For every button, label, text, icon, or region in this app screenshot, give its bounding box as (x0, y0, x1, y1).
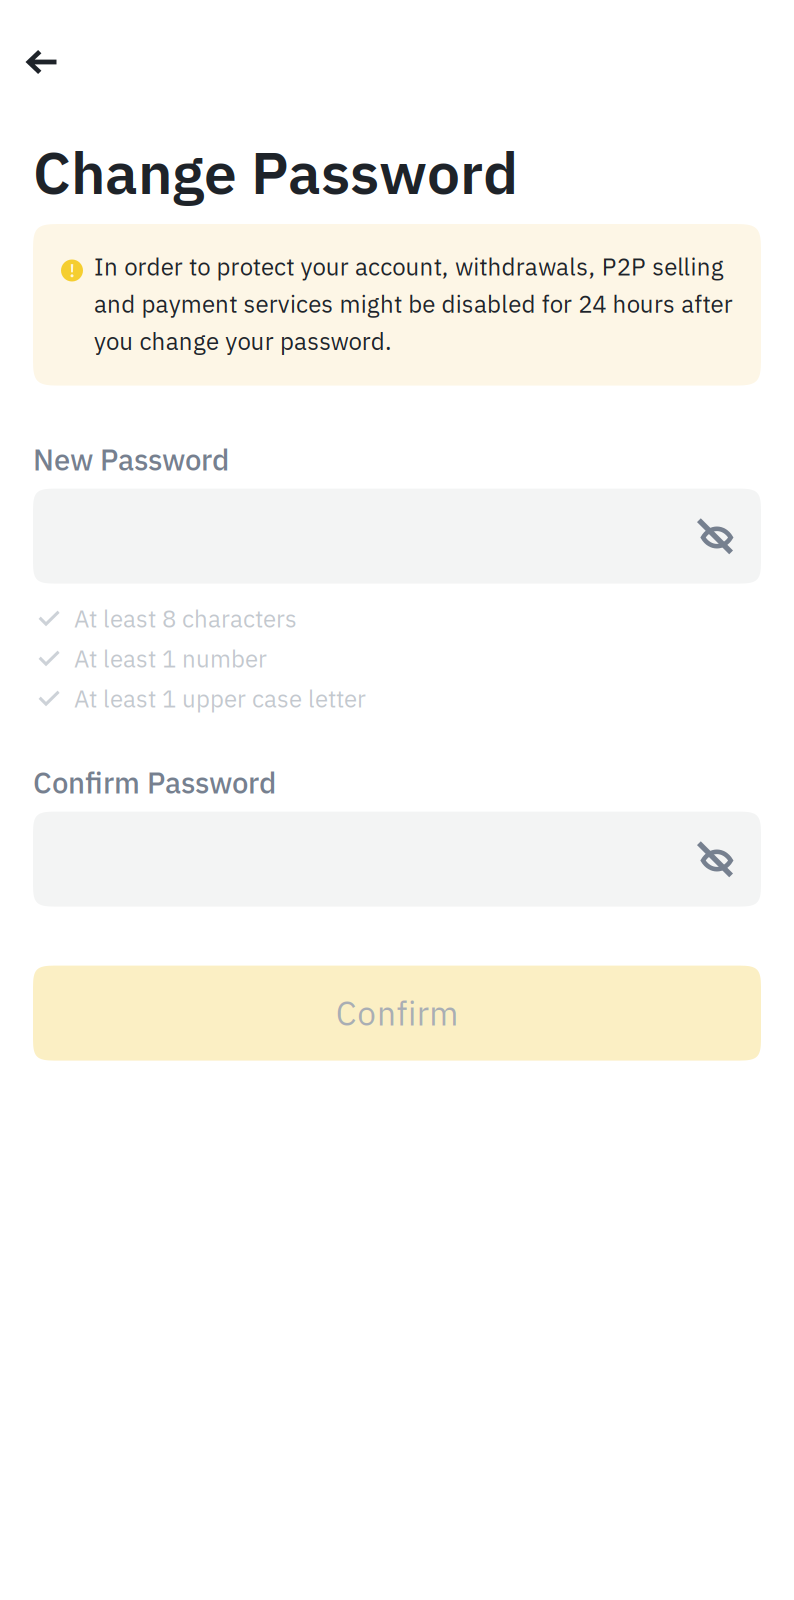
staticText: New Password (33, 440, 229, 479)
staticText: Change Password (33, 134, 518, 210)
button[interactable]: Show password (671, 812, 761, 907)
staticText: In order to protect your account, withdr… (94, 251, 733, 357)
staticText: At least 8 characters (74, 603, 297, 634)
button[interactable]: Back (0, 0, 82, 124)
staticText: Confirm Password (33, 763, 276, 802)
staticText: Confirm (336, 991, 458, 1035)
button[interactable]: Show password (671, 489, 761, 584)
button[interactable]: Confirm (33, 966, 761, 1061)
staticText: At least 1 upper case letter (74, 683, 366, 714)
staticText: At least 1 number (74, 643, 267, 674)
